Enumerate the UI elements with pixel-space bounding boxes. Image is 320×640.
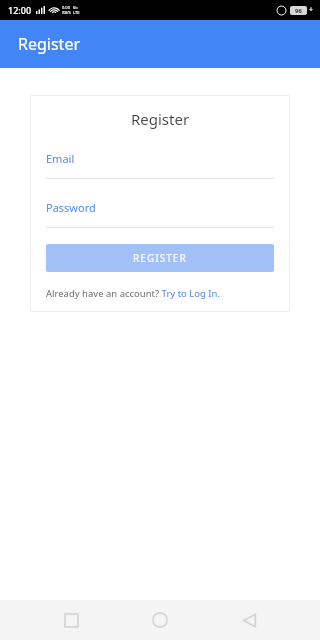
button[interactable]: Home [142,602,178,638]
staticText: 0.00 KB/S [62,5,71,15]
staticText: Vo LTE [73,5,80,15]
staticText: Password [46,200,96,215]
staticText: 12:00 [8,4,32,16]
button[interactable]: Already have an account? Try to Log In. [46,287,274,300]
button[interactable]: Email [46,151,274,179]
button[interactable]: Password [46,200,274,228]
button[interactable]: Recent apps [53,602,89,638]
button[interactable]: REGISTER [46,244,274,272]
staticText: Email [46,151,75,166]
staticText: REGISTER [133,251,187,265]
staticText: Already have an account? Try to Log In. [46,287,220,300]
staticText: Register [46,109,274,129]
staticText: Register [18,33,81,55]
button[interactable]: Back [231,602,267,638]
staticText: + [309,5,314,15]
staticText: 96 [295,7,302,15]
